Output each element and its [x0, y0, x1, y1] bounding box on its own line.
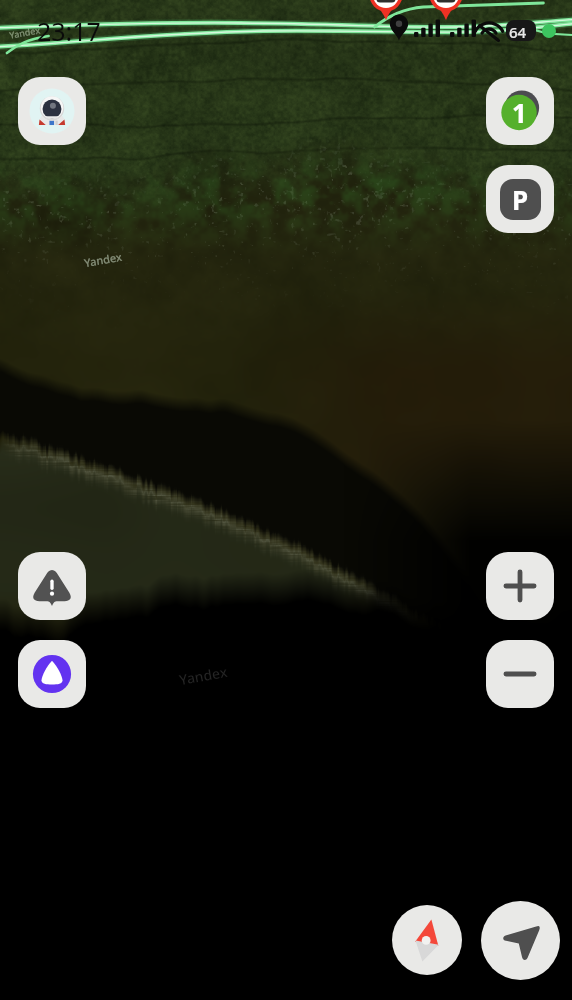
staticText: Yandex	[8, 23, 42, 41]
staticText: P	[512, 182, 529, 217]
button[interactable]: Report road event	[18, 552, 86, 620]
staticText: Yandex	[178, 662, 229, 689]
button[interactable]: Zoom in	[486, 552, 554, 620]
button[interactable]: My location	[481, 901, 560, 980]
staticText: 23:17	[37, 14, 101, 48]
staticText: Yandex	[83, 249, 123, 270]
button[interactable]: Zoom out	[486, 640, 554, 708]
button[interactable]: Alice assistant	[18, 640, 86, 708]
staticText: 64	[509, 22, 527, 42]
button[interactable]: Profile	[18, 77, 86, 145]
button[interactable]: Compass	[392, 905, 462, 975]
button[interactable]: Traffic jams level 1	[486, 77, 554, 145]
button[interactable]: Parking	[486, 165, 554, 233]
staticText: 1	[512, 95, 527, 130]
